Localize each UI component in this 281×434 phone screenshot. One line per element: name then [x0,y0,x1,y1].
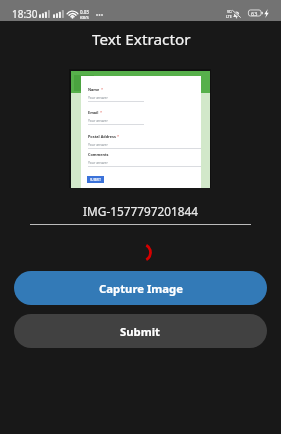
staticText: KB/S [80,15,89,20]
staticText: Submit [120,324,161,339]
staticText: SUBMIT [90,178,101,182]
staticText: Your answer [88,95,108,100]
staticText: Capture Image [99,281,183,296]
staticText: 0.03 [80,9,89,15]
staticText: Email [88,110,99,115]
staticText: Your answer [88,142,108,147]
button[interactable]: Capture Image [14,271,267,305]
staticText: * [99,110,103,115]
staticText: LTE [226,14,232,19]
staticText: IMG-1577797201844 [30,203,251,219]
staticText: * [100,87,104,92]
staticText: * [116,134,120,139]
staticText: Name [88,87,100,92]
staticText: Your answer [88,118,108,123]
button[interactable]: Submit [14,314,267,348]
staticText: Your answer [88,160,108,165]
staticText: VO [227,9,232,14]
staticText: Comments [88,152,109,157]
staticText: 18:30 [12,7,38,21]
staticText: Text Extractor [92,29,191,49]
staticText: 63 [251,10,258,17]
staticText: Postal Address [88,134,116,139]
